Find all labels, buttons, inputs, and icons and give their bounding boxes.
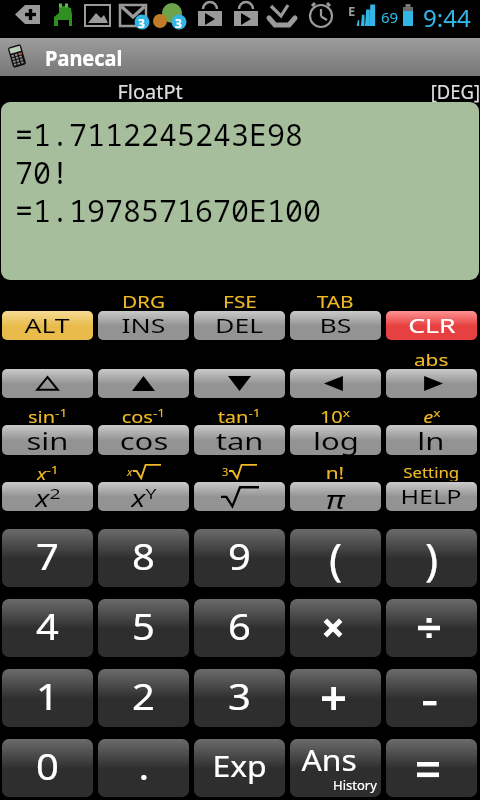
staticText: 70! [15,152,69,193]
staticText: =1.7112245243E98 [15,114,303,155]
button[interactable]: 7 [2,529,93,587]
staticText: ln [417,425,446,455]
staticText: sin-1 [28,405,68,423]
staticText: 9:44 [423,1,471,30]
button[interactable]: Move left [290,369,381,398]
button[interactable]: 1 [2,669,93,727]
staticText: 5 [132,600,156,650]
button[interactable]: BS [290,311,381,340]
staticText: HELP [400,484,462,510]
staticText: cos [120,425,168,455]
staticText: E [348,2,356,20]
button[interactable]: [DEG] [430,79,480,105]
button[interactable]: x2 [2,482,93,511]
button[interactable]: ) [386,529,477,587]
button[interactable]: HELP [386,482,477,511]
staticText: π [326,482,345,511]
button[interactable]: Square root [194,482,285,511]
button[interactable]: 2 [98,669,189,727]
staticText: x2 [35,482,61,511]
button[interactable]: CLR [386,311,477,340]
staticText: DEL [215,313,264,339]
staticText: 0 [36,740,60,790]
staticText: 1 [36,670,60,720]
staticText: abs [414,349,449,367]
staticText: tan [216,425,264,455]
button[interactable]: Panecal [0,38,480,76]
staticText: =1.1978571670E100 [15,190,321,231]
button[interactable]: Divide [386,599,477,657]
button[interactable]: Equals [386,739,477,797]
button[interactable]: INS [98,311,189,340]
button[interactable]: Multiply [290,599,381,657]
staticText: 2 [132,670,156,720]
button[interactable]: 9 [194,529,285,587]
staticText: Setting [403,463,460,481]
staticText: xY [131,482,157,511]
staticText: 3 [222,464,229,479]
button[interactable]: 0 [2,739,93,797]
staticText: x-1 [37,462,59,480]
staticText: Ans [301,740,358,779]
button[interactable]: Exp [194,739,285,797]
staticText: sin [26,425,70,455]
staticText: cos-1 [122,405,165,423]
staticText: 3 [228,670,252,720]
button[interactable]: ( [290,529,381,587]
button[interactable]: Move down [194,369,285,398]
button[interactable]: Minus [386,669,477,727]
button[interactable]: DEL [194,311,285,340]
staticText: FSE [223,291,257,309]
button[interactable]: Ans [290,739,381,797]
staticText: ) [425,529,439,586]
staticText: DRG [122,291,166,309]
staticText: ( [329,529,343,586]
staticText: 10x [320,405,351,423]
staticText: Panecal [45,44,123,73]
staticText: CLR [408,313,456,339]
button[interactable]: 3 [194,669,285,727]
button[interactable]: cos [98,425,189,455]
staticText: Exp [212,746,267,785]
staticText: x [127,464,133,479]
staticText: n! [326,462,345,480]
button[interactable]: FloatPt [119,79,182,105]
button[interactable]: Move up [98,369,189,398]
button[interactable]: 4 [2,599,93,657]
staticText: 3 [175,15,182,31]
button[interactable]: sin [2,425,93,455]
staticText: TAB [317,291,354,309]
button[interactable]: tan [194,425,285,455]
staticText: tan-1 [218,405,261,423]
staticText: 69 [381,7,399,27]
staticText: 4 [36,600,60,650]
button[interactable]: ln [386,425,477,455]
button[interactable]: log [290,425,381,455]
staticText: ex [423,405,441,423]
staticText: INS [122,313,166,339]
button[interactable]: Cursor [2,369,93,398]
staticText: 9 [228,530,252,580]
staticText: BS [319,313,352,339]
staticText: 8 [132,530,156,580]
staticText: 7 [36,530,60,580]
staticText: 3 [138,15,145,31]
button[interactable]: . [98,739,189,797]
button[interactable]: Plus [290,669,381,727]
button[interactable]: 6 [194,599,285,657]
staticText: ALT [24,313,71,339]
staticText: 6 [228,600,252,650]
button[interactable]: =1.7112245243E98 [1,102,479,280]
button[interactable]: 5 [98,599,189,657]
button[interactable]: π [290,482,381,511]
button[interactable]: ALT [2,311,93,340]
button[interactable]: 8 [98,529,189,587]
staticText: History [333,776,377,794]
button[interactable]: xY [98,482,189,511]
button[interactable]: Move right [386,369,477,398]
staticText: log [313,425,359,455]
staticText: . [139,740,149,790]
